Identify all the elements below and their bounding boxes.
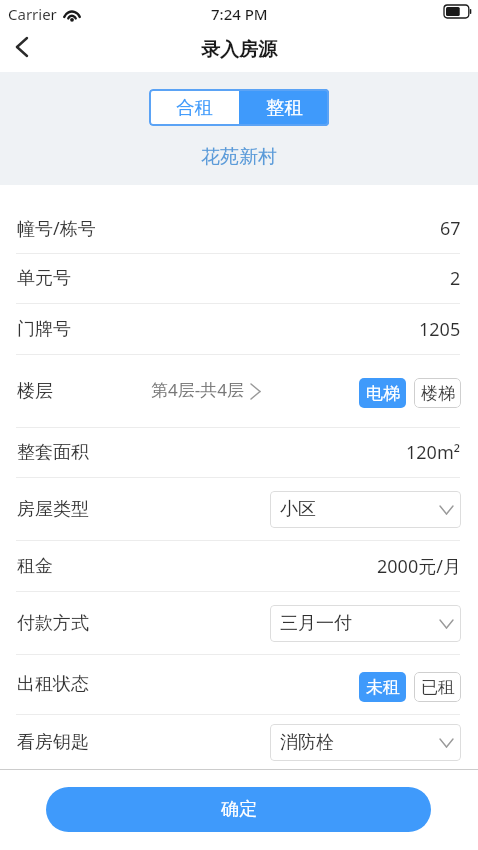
staticText: 确定 xyxy=(221,798,257,821)
staticText: 消防栓 xyxy=(280,731,334,754)
staticText: 整租 xyxy=(266,96,303,119)
button[interactable]: Back xyxy=(0,28,44,72)
staticText: 合租 xyxy=(176,96,213,119)
button[interactable]: 已租 xyxy=(414,672,461,702)
staticText: 7:24 PM xyxy=(211,4,268,24)
staticText: 小区 xyxy=(280,498,316,521)
button[interactable]: 幢号/栋号 xyxy=(0,203,478,253)
staticText: 房屋类型 xyxy=(17,498,89,521)
staticText: 门牌号 xyxy=(17,318,71,341)
staticText: 看房钥匙 xyxy=(17,731,89,754)
button[interactable]: 整套面积 xyxy=(0,428,478,477)
staticText: 2000元/月 xyxy=(377,554,461,579)
staticText: 电梯 xyxy=(366,383,400,404)
button[interactable]: 确定 xyxy=(46,787,431,832)
staticText: 120m² xyxy=(406,440,461,465)
staticText: 幢号/栋号 xyxy=(17,216,96,241)
staticText: 三月一付 xyxy=(280,612,352,635)
button[interactable]: 电梯 xyxy=(359,378,406,408)
button[interactable]: 租金 xyxy=(0,541,478,591)
button[interactable]: 第4层-共4层 xyxy=(151,378,260,404)
button[interactable]: 门牌号 xyxy=(0,304,478,354)
staticText: 录入房源 xyxy=(201,38,277,62)
button[interactable]: 花苑新村 xyxy=(201,145,277,169)
staticText: 出租状态 xyxy=(17,673,89,696)
staticText: 2 xyxy=(450,266,461,291)
staticText: 楼层 xyxy=(17,380,53,403)
staticText: Carrier xyxy=(8,4,57,24)
staticText: 1205 xyxy=(419,317,461,342)
button[interactable]: 整租 xyxy=(239,89,329,126)
staticText: 付款方式 xyxy=(17,612,89,635)
button[interactable]: 未租 xyxy=(359,672,406,702)
button[interactable]: 消防栓 xyxy=(270,724,461,761)
button[interactable]: 楼梯 xyxy=(414,378,461,408)
button[interactable]: 合租 xyxy=(149,89,239,126)
staticText: 67 xyxy=(440,216,461,241)
staticText: 楼梯 xyxy=(421,383,455,404)
staticText: 第4层-共4层 xyxy=(151,378,244,401)
staticText: 花苑新村 xyxy=(201,145,277,169)
staticText: 未租 xyxy=(366,677,400,698)
staticText: 租金 xyxy=(17,555,53,578)
button[interactable]: 三月一付 xyxy=(270,605,461,642)
staticText: 已租 xyxy=(421,677,455,698)
button[interactable]: 小区 xyxy=(270,491,461,528)
staticText: 单元号 xyxy=(17,267,71,290)
staticText: 整套面积 xyxy=(17,441,89,464)
button[interactable]: 单元号 xyxy=(0,254,478,303)
